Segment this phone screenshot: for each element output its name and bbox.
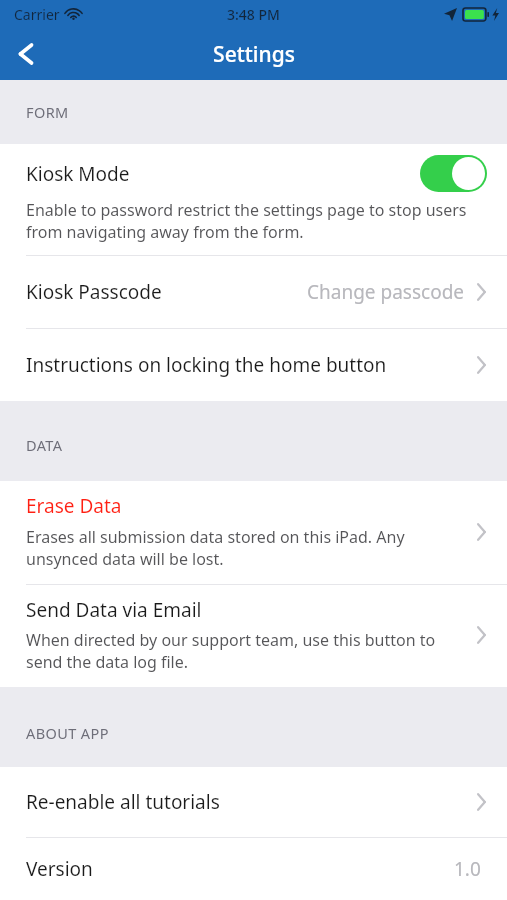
staticText: 1.0 <box>454 856 481 882</box>
button[interactable]: Re-enable all tutorials <box>0 767 507 837</box>
button[interactable]: Send Data via Email <box>0 585 507 687</box>
staticText: Carrier <box>14 5 60 24</box>
staticText: Kiosk Passcode <box>26 279 162 305</box>
button[interactable]: Kiosk Mode <box>0 144 507 255</box>
staticText: When directed by our support team, use t… <box>26 629 461 673</box>
button[interactable]: Instructions on locking the home button <box>0 329 507 401</box>
staticText: Change passcode <box>307 279 465 305</box>
staticText: Erases all submission data stored on thi… <box>26 526 457 570</box>
button[interactable]: Kiosk Passcode <box>0 256 507 328</box>
staticText: Erase Data <box>26 493 122 519</box>
staticText: Version <box>26 856 93 882</box>
staticText: Send Data via Email <box>26 597 202 623</box>
staticText: 3:48 PM <box>227 5 280 24</box>
staticText: Kiosk Mode <box>26 161 130 187</box>
button[interactable]: Erase Data <box>0 481 507 584</box>
staticText: Instructions on locking the home button <box>26 352 387 378</box>
staticText: FORM <box>26 102 69 122</box>
staticText: ABOUT APP <box>26 723 109 743</box>
staticText: DATA <box>26 435 63 455</box>
staticText: Re-enable all tutorials <box>26 789 220 815</box>
staticText: Settings <box>213 40 295 69</box>
button[interactable]: Kiosk Mode toggle <box>420 155 487 192</box>
button[interactable]: Back <box>0 28 52 80</box>
staticText: Enable to password restrict the settings… <box>26 199 481 243</box>
